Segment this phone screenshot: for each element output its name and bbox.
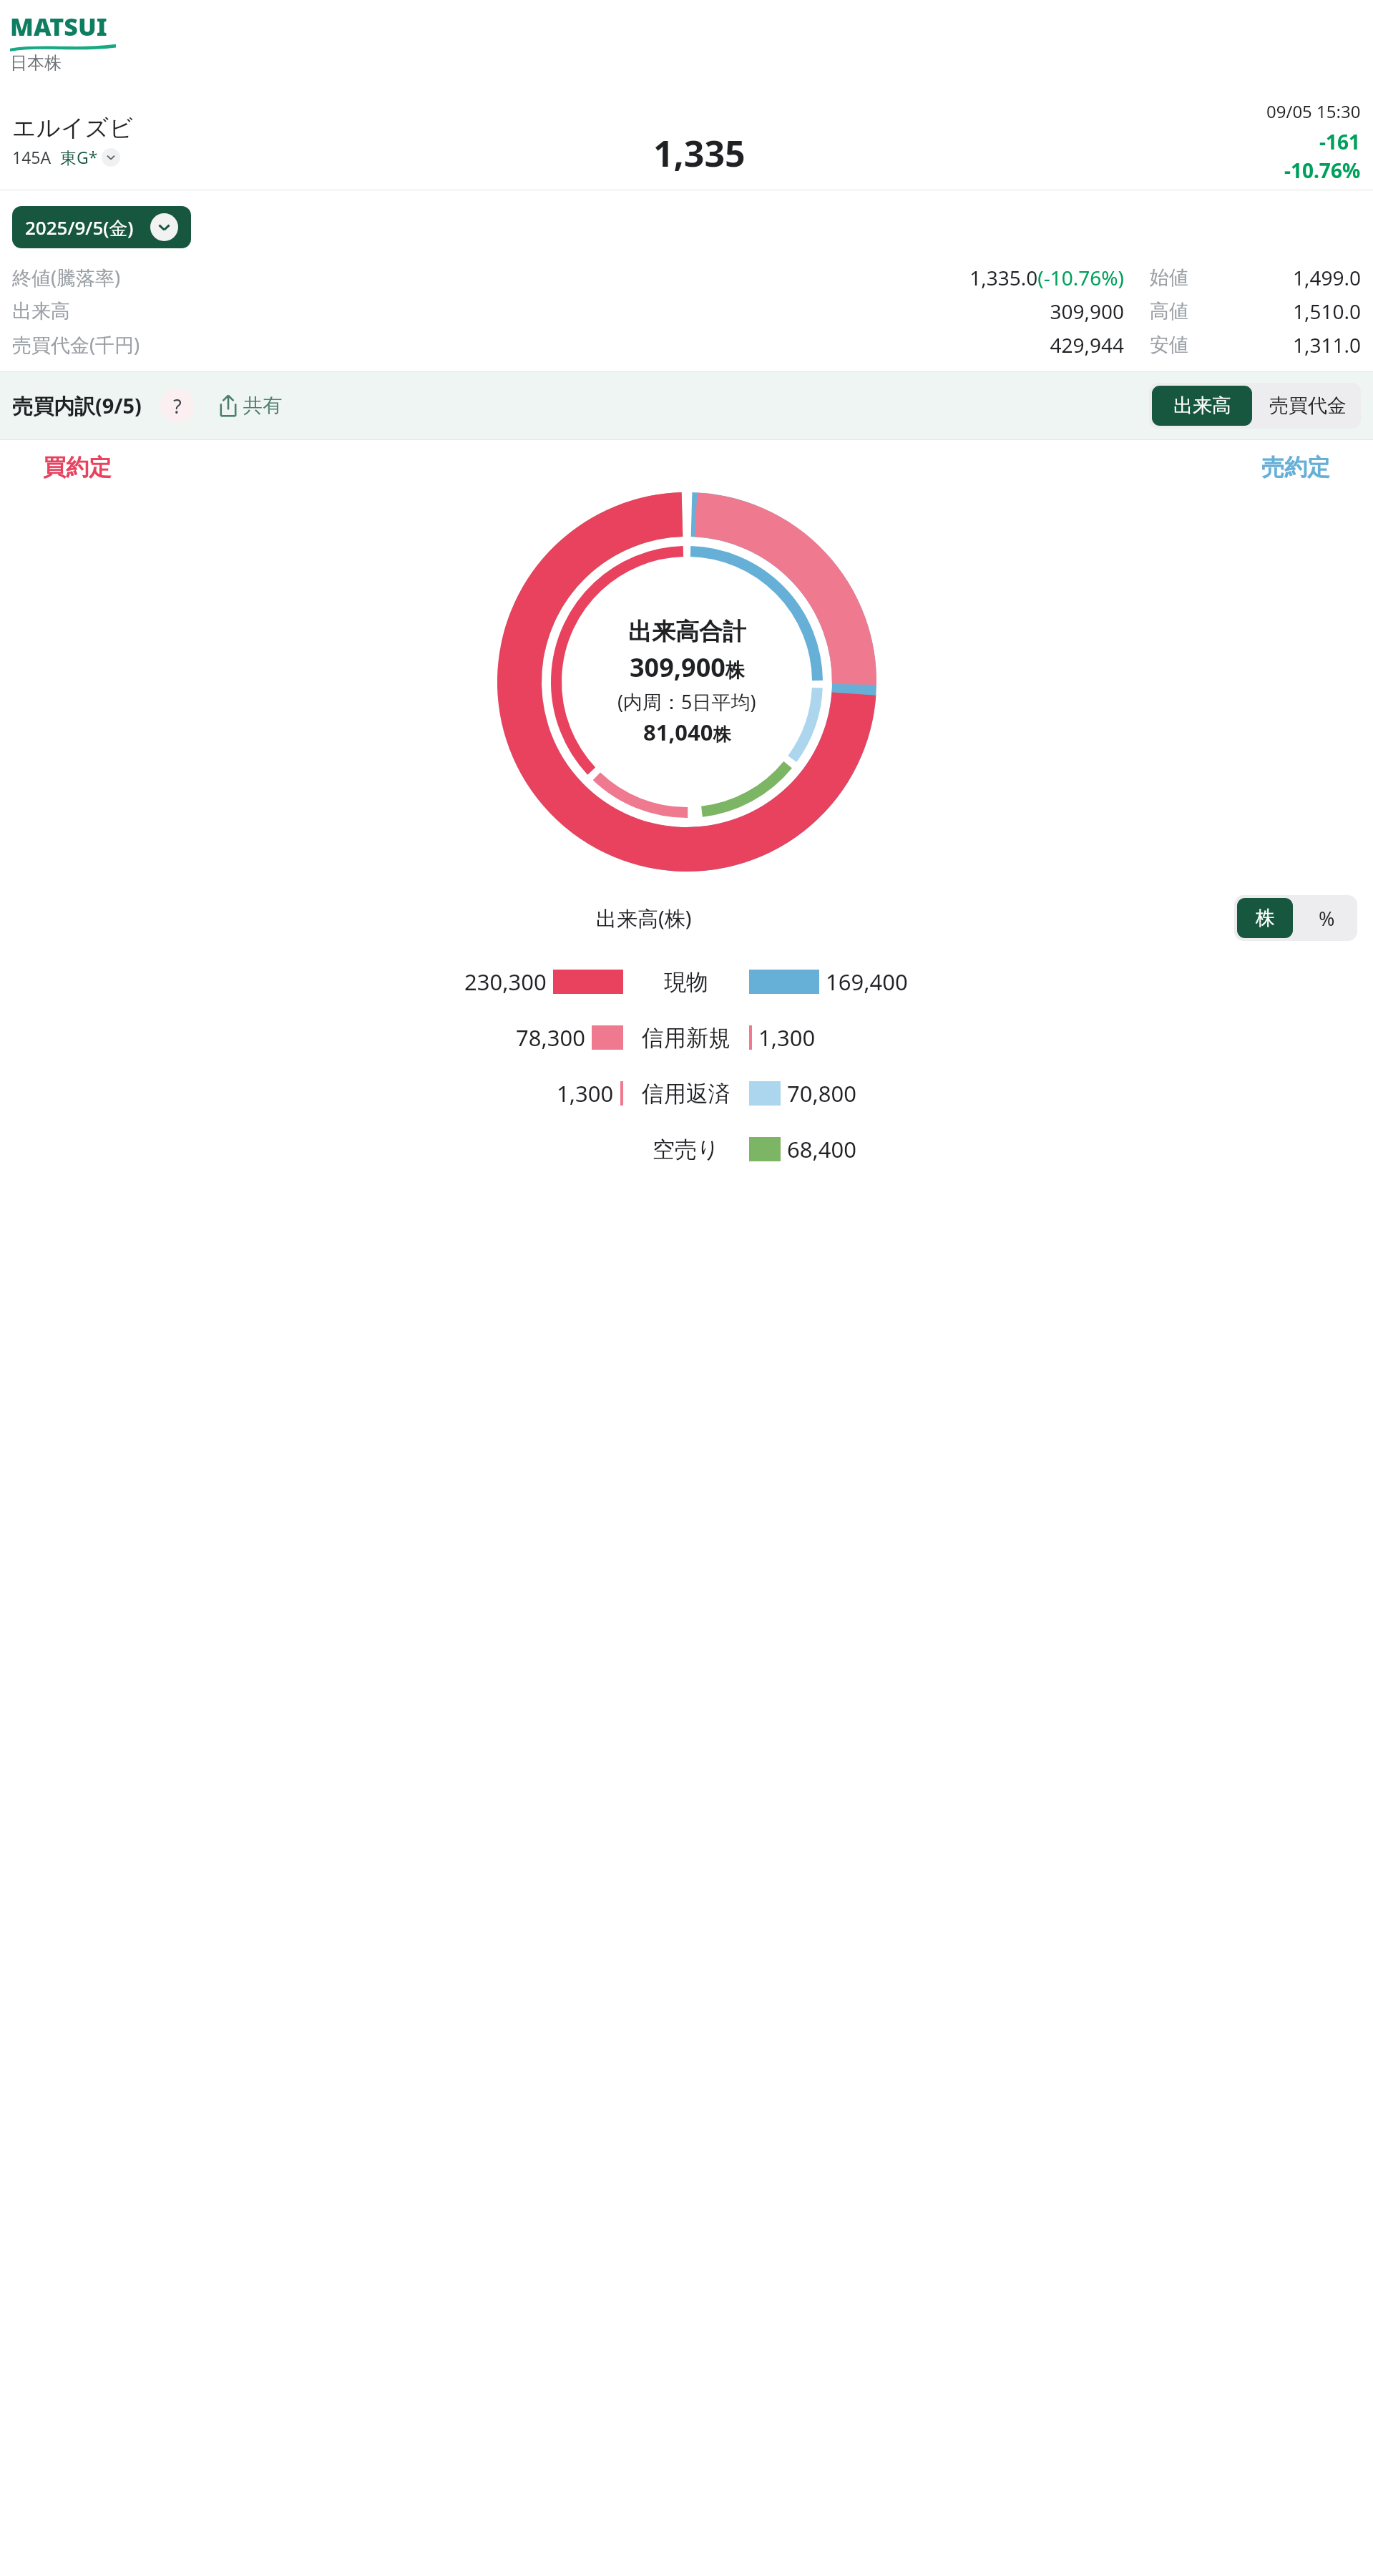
staticText: 株 xyxy=(1256,906,1275,930)
staticText: 429,944 xyxy=(1050,331,1124,358)
staticText: 東G* xyxy=(60,146,98,168)
staticText: 買約定 xyxy=(43,453,112,482)
staticText: 1,311.0 xyxy=(1228,331,1361,358)
staticText: 309,900 xyxy=(1050,298,1124,325)
staticText: 現物 xyxy=(664,968,708,996)
staticText: 1,335 xyxy=(653,129,746,177)
staticText: 出来高合計 xyxy=(628,617,746,647)
staticText: 日本株 xyxy=(10,52,62,74)
staticText: % xyxy=(1319,905,1335,932)
button[interactable]: 2025/9/5(金) xyxy=(12,206,191,248)
staticText: 出来高 xyxy=(12,299,195,323)
button[interactable]: % xyxy=(1296,895,1357,941)
staticText: 81,040株 xyxy=(643,717,731,747)
staticText: 70,800 xyxy=(787,1078,856,1108)
button[interactable]: 共有 xyxy=(213,391,285,421)
staticText: (内周：5日平均) xyxy=(617,688,756,715)
staticText: 145A xyxy=(12,146,52,168)
staticText: -161 xyxy=(1319,128,1361,155)
staticText: 共有 xyxy=(243,394,282,418)
staticText: 78,300 xyxy=(516,1023,585,1053)
staticText: 売約定 xyxy=(1261,453,1330,482)
staticText: 1,300 xyxy=(557,1078,614,1108)
staticText: 終値(騰落率) xyxy=(12,264,195,291)
staticText: 高値 xyxy=(1150,299,1228,323)
button[interactable]: ヘルプ xyxy=(160,389,195,423)
button[interactable]: 株 xyxy=(1237,898,1293,938)
staticText: 始値 xyxy=(1150,265,1228,290)
staticText: 1,300 xyxy=(758,1023,816,1053)
staticText: 信用新規 xyxy=(642,1024,731,1052)
staticText: MATSUI xyxy=(10,10,107,43)
staticText: ? xyxy=(173,393,182,419)
staticText: 68,400 xyxy=(787,1134,856,1164)
staticText: 309,900株 xyxy=(630,650,745,685)
staticText: 169,400 xyxy=(826,967,908,997)
staticText: 空売り xyxy=(653,1136,720,1163)
staticText: 230,300 xyxy=(464,967,547,997)
staticText: 信用返済 xyxy=(642,1080,731,1108)
staticText: -10.76% xyxy=(1284,157,1361,184)
staticText: 売買代金 xyxy=(1269,394,1347,418)
staticText: 1,335.0(-10.76%) xyxy=(969,264,1124,291)
staticText: エルイズビ xyxy=(12,113,133,143)
staticText: 売買内訳(9/5) xyxy=(12,391,142,420)
staticText: 2025/9/5(金) xyxy=(25,215,134,240)
staticText: 1,499.0 xyxy=(1228,264,1361,291)
staticText: 1,510.0 xyxy=(1228,298,1361,325)
button[interactable]: 東G* xyxy=(60,145,120,170)
staticText: 出来高 xyxy=(1173,394,1231,418)
staticText: 安値 xyxy=(1150,333,1228,357)
staticText: 出来高(株) xyxy=(596,904,692,932)
button[interactable]: 出来高 xyxy=(1152,386,1252,426)
button[interactable]: 売買代金 xyxy=(1255,383,1361,429)
staticText: 09/05 15:30 xyxy=(1266,99,1361,123)
staticText: 売買代金(千円) xyxy=(12,331,195,358)
